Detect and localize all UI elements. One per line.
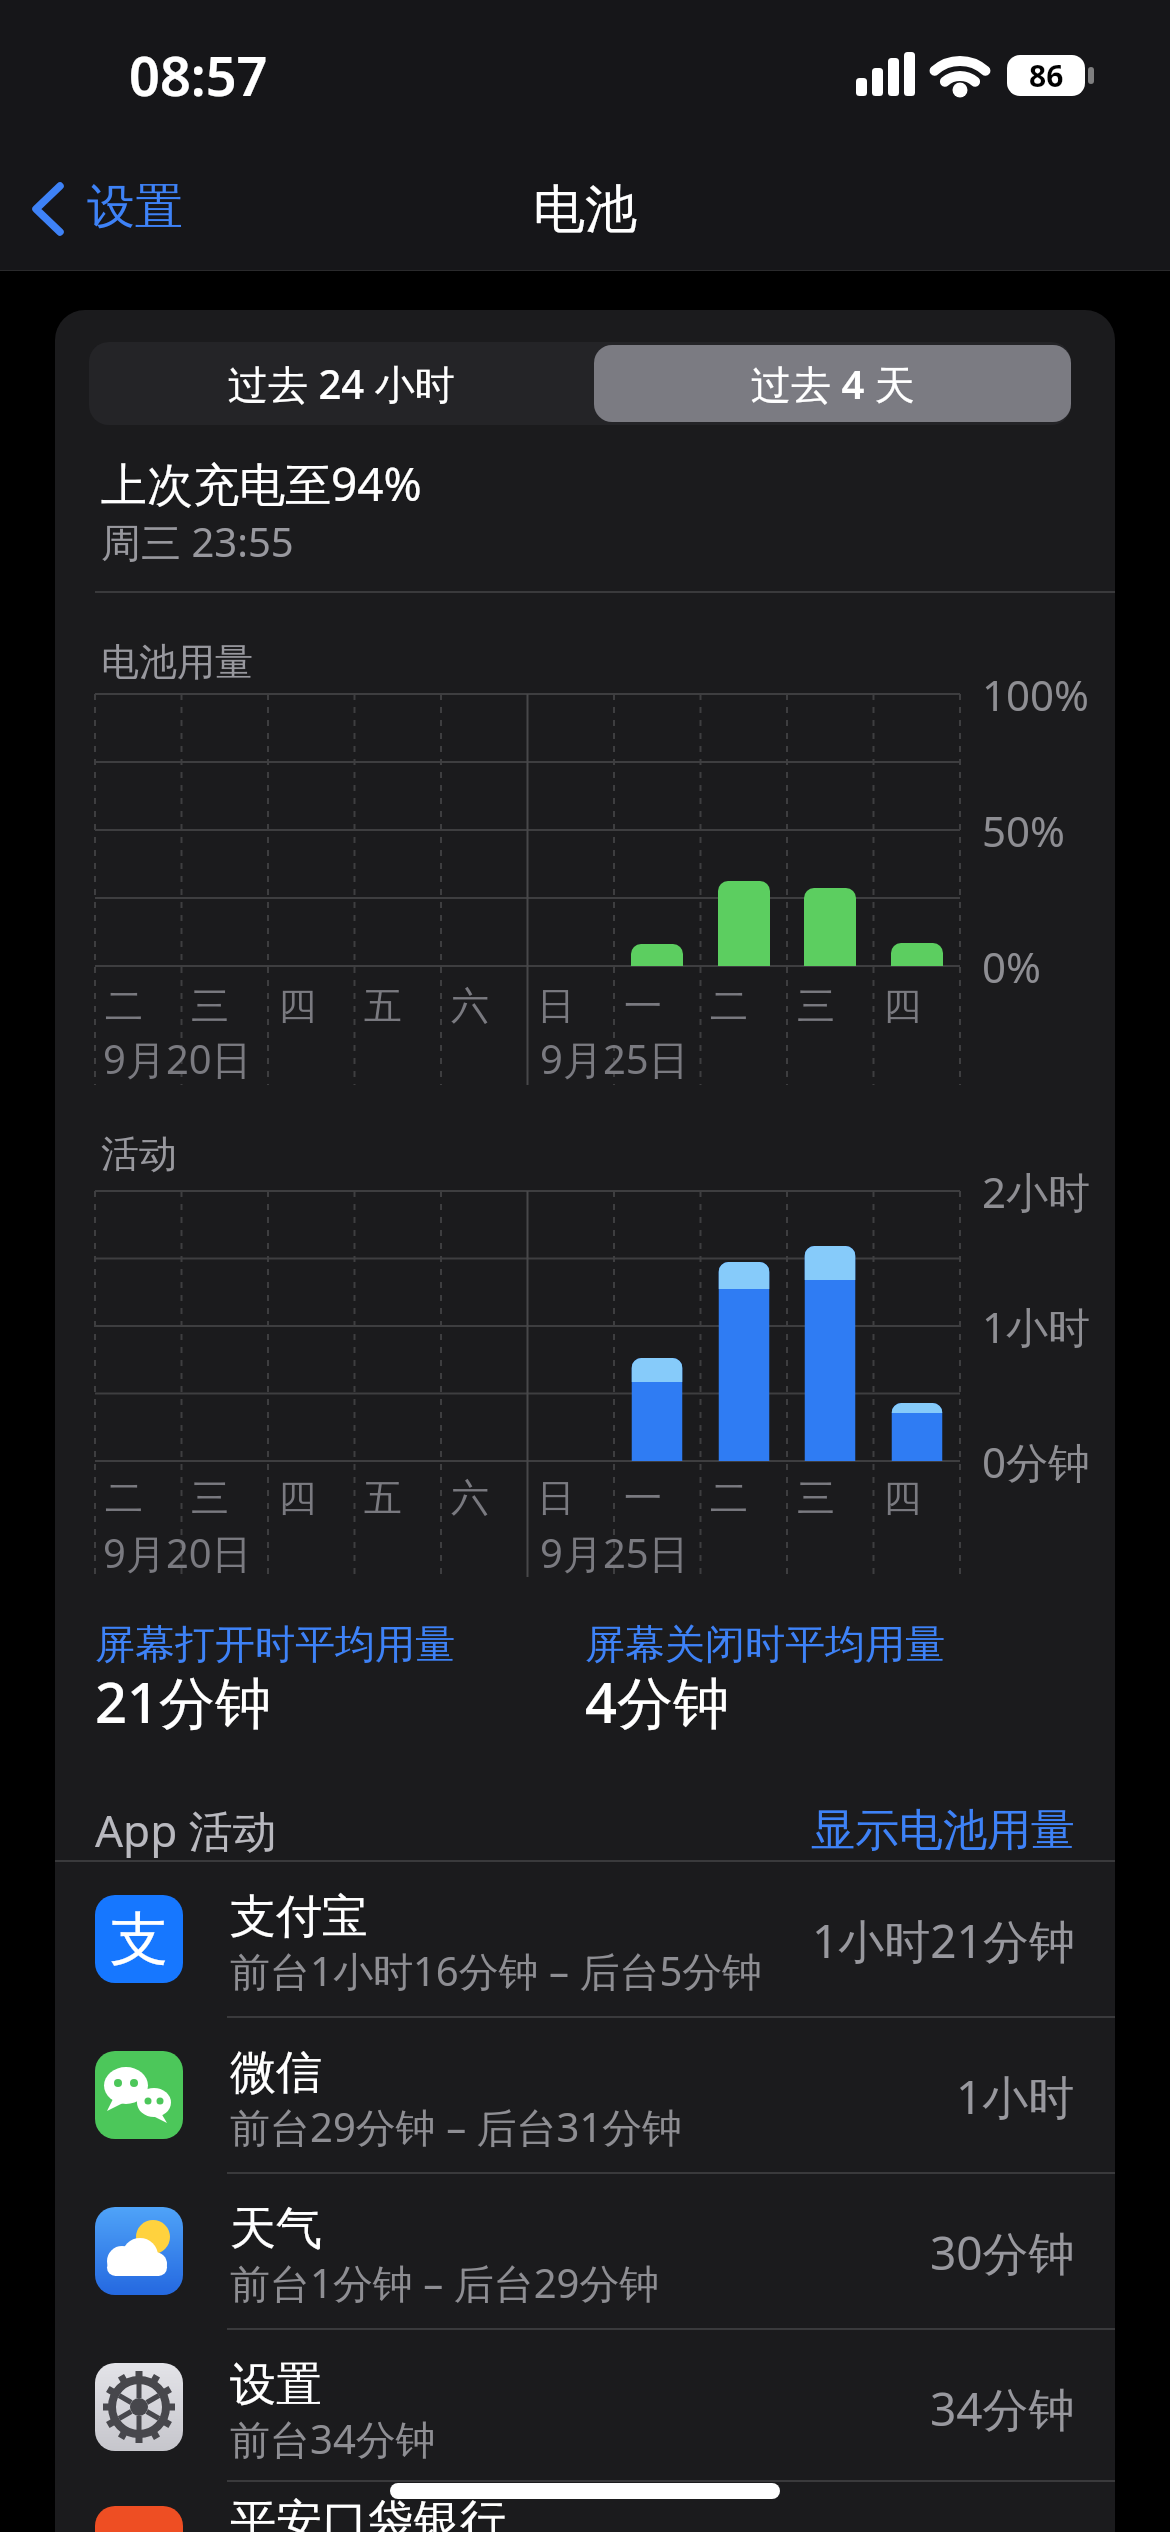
staticText: 一 [624,1474,662,1522]
staticText: 二 [710,1474,748,1522]
staticText: 三 [191,982,229,1030]
staticText: 微信 [230,2044,322,2102]
staticText: 三 [797,1474,835,1522]
staticText: 三 [797,982,835,1030]
staticText: 1小时 [982,1298,1091,1355]
button[interactable] [55,2019,1115,2173]
staticText: 30分钟 [930,2221,1075,2284]
staticText: 五 [364,982,402,1030]
staticText: 平安口袋银行 [230,2493,506,2532]
staticText: 前台1小时16分钟 – 后台5分钟 [230,1943,763,1998]
staticText: 四 [278,1474,316,1522]
staticText: 前台34分钟 [230,2411,436,2466]
staticText: 屏幕打开时平均用量 [95,1619,455,1669]
staticText: App 活动 [95,1800,277,1860]
staticText: 1小时21分钟 [812,1909,1075,1972]
staticText: 支付宝 [230,1888,368,1946]
staticText: 1小时 [956,2065,1075,2128]
staticText: 二 [105,982,143,1030]
staticText: 50% [982,802,1065,859]
staticText: 电池用量 [101,638,253,686]
staticText: 二 [710,982,748,1030]
button[interactable] [775,1806,1075,1854]
staticText: 9月20日 [103,1031,252,1086]
staticText: 一 [624,982,662,1030]
staticText: 0% [982,938,1041,995]
staticText: 9月25日 [540,1031,689,1086]
staticText: 三 [191,1474,229,1522]
staticText: 天气 [230,2200,322,2258]
staticText: 9月25日 [540,1525,689,1580]
staticText: 21分钟 [95,1663,272,1739]
staticText: 9月20日 [103,1525,252,1580]
staticText: 4分钟 [585,1663,730,1739]
staticText: 100% [982,666,1089,723]
staticText: 六 [451,982,489,1030]
button[interactable] [20,170,210,250]
staticText: 设置 [230,2356,322,2414]
staticText: 支 [110,1903,168,1976]
staticText: 2小时 [982,1163,1091,1220]
staticText: 显示电池用量 [811,1803,1075,1858]
staticText: 电池 [533,177,637,243]
staticText: 四 [278,982,316,1030]
button[interactable] [594,345,1071,422]
staticText: 屏幕关闭时平均用量 [585,1619,945,1669]
staticText: 34分钟 [930,2377,1075,2440]
staticText: 五 [364,1474,402,1522]
staticText: 二 [105,1474,143,1522]
staticText: 0分钟 [982,1433,1091,1490]
staticText: 过去 24 小时 [228,356,455,411]
button[interactable] [89,342,594,425]
staticText: 周三 23:55 [101,514,294,569]
staticText: 前台29分钟 – 后台31分钟 [230,2099,683,2154]
staticText: 日 [537,982,575,1030]
staticText: 四 [883,982,921,1030]
staticText: 过去 4 天 [751,356,915,411]
staticText: 六 [451,1474,489,1522]
button[interactable] [55,1863,1115,2017]
staticText: 上次充电至94% [101,452,422,515]
staticText: 08:57 [129,38,268,112]
button[interactable] [55,2331,1115,2485]
staticText: 前台1分钟 – 后台29分钟 [230,2255,660,2310]
staticText: 86 [1029,55,1064,96]
button[interactable] [55,2175,1115,2329]
staticText: 四 [883,1474,921,1522]
staticText: 日 [537,1474,575,1522]
staticText: 设置 [87,177,183,237]
staticText: 活动 [101,1130,177,1178]
